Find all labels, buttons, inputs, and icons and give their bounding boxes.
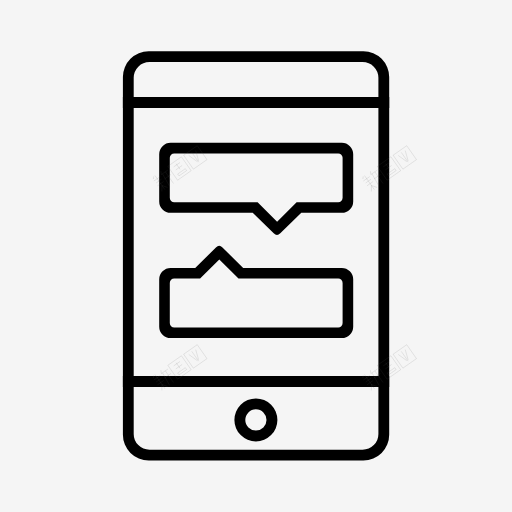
button[interactable]: Smartphone chat conversation (0, 0, 512, 512)
